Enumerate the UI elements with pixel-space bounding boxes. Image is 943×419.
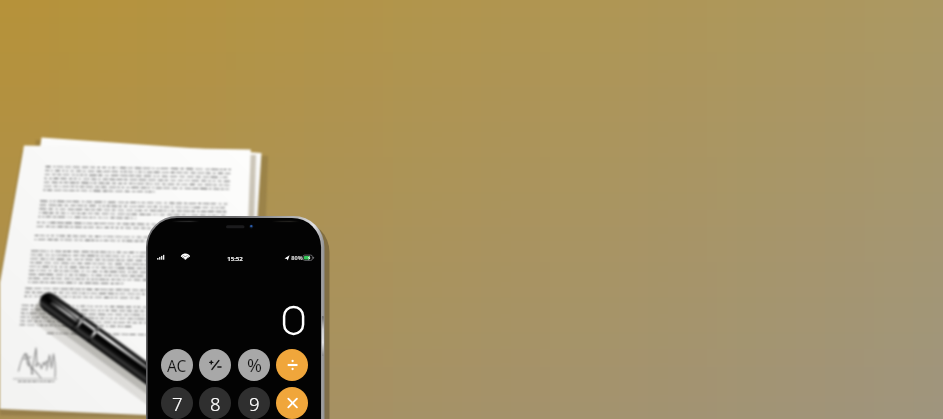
button[interactable]: 8 [199, 387, 231, 419]
staticText: 8 [210, 391, 221, 416]
staticText: 7 [172, 391, 183, 416]
staticText: AC [167, 355, 187, 376]
button[interactable]: calculator key [199, 349, 231, 381]
staticText: 15:52 [227, 254, 243, 262]
button[interactable]: AC [161, 349, 193, 381]
staticText: % [247, 353, 262, 378]
staticText: 80% [291, 254, 303, 262]
button[interactable]: calculator key [276, 387, 308, 419]
button[interactable]: % [238, 349, 270, 381]
button[interactable]: 7 [161, 387, 193, 419]
button[interactable]: 9 [238, 387, 270, 419]
staticText: 9 [249, 391, 260, 416]
button[interactable]: calculator key [276, 349, 308, 381]
